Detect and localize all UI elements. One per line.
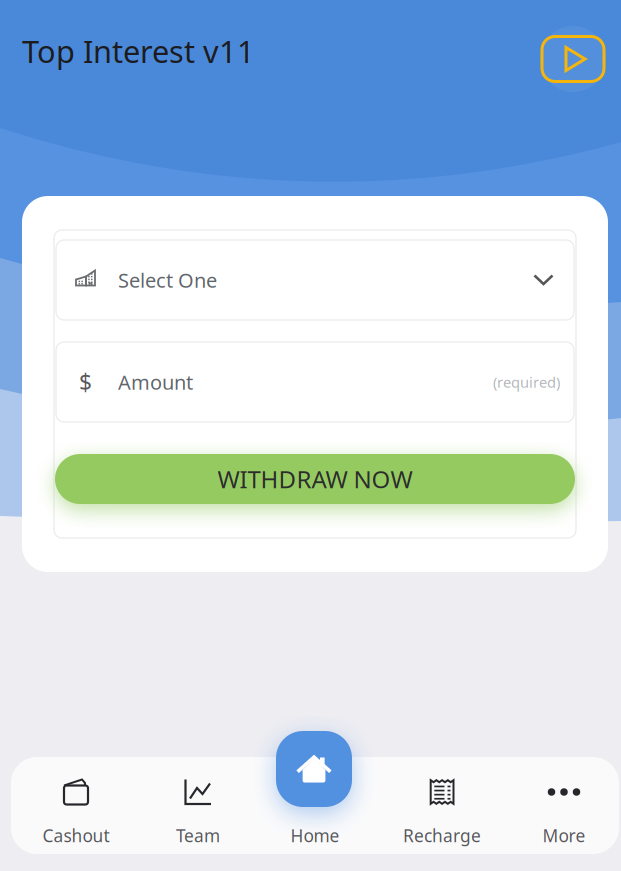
button[interactable]: More — [509, 757, 619, 854]
button[interactable]: Play video — [530, 26, 616, 92]
staticText: Home — [290, 824, 339, 847]
staticText: Team — [176, 824, 220, 847]
button[interactable]: Cashout — [11, 757, 141, 854]
button[interactable]: $ — [56, 342, 574, 422]
button[interactable]: Home — [255, 757, 375, 854]
button[interactable]: Team — [141, 757, 255, 854]
staticText: WITHDRAW NOW — [217, 463, 412, 495]
staticText: (required) — [493, 372, 560, 392]
button[interactable]: Home — [276, 731, 352, 807]
staticText: Top Interest v11 — [22, 31, 255, 71]
staticText: More — [542, 824, 585, 847]
staticText: Select One — [118, 267, 217, 293]
button[interactable]: Select One — [56, 240, 574, 320]
button[interactable]: Recharge — [375, 757, 509, 854]
staticText: Recharge — [403, 824, 481, 847]
staticText: $ — [79, 367, 92, 397]
staticText: Cashout — [42, 824, 109, 847]
button[interactable]: WITHDRAW NOW — [55, 454, 575, 504]
staticText: Amount — [118, 369, 193, 395]
